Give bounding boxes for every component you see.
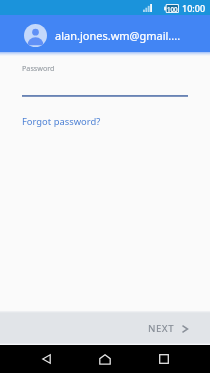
- button[interactable]: Back: [32, 345, 60, 373]
- button[interactable]: alan.jones.wm@gmail....: [24, 15, 210, 52]
- staticText: Password: [22, 63, 55, 73]
- staticText: 100: [167, 5, 178, 13]
- button[interactable]: NEXT: [148, 322, 188, 335]
- staticText: 10:00: [182, 2, 206, 14]
- staticText: NEXT: [148, 322, 175, 335]
- staticText: alan.jones.wm@gmail....: [55, 28, 181, 43]
- staticText: Forgot password?: [22, 115, 101, 128]
- button[interactable]: Recents: [150, 345, 178, 373]
- button[interactable]: Forgot password?: [22, 115, 101, 128]
- button[interactable]: Home: [91, 345, 119, 373]
